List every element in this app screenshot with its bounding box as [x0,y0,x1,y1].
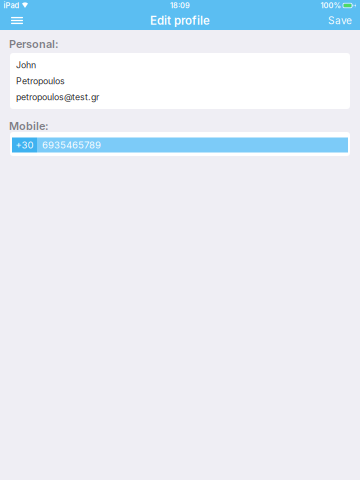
staticText: +30 [15,139,33,151]
staticText: 6935465789 [42,139,101,151]
button[interactable]: 6935465789 [37,137,348,152]
staticText: iPad [3,1,19,10]
button[interactable]: Menu [0,11,34,30]
button[interactable]: +30 [12,137,37,152]
staticText: 100% [320,1,340,10]
button[interactable]: petropoulos@test.gr [10,89,350,105]
staticText: Save [328,14,352,27]
staticText: Petropoulos [16,76,65,86]
button[interactable]: Save [316,11,360,30]
staticText: Mobile: [9,119,48,133]
staticText: 18:09 [170,1,190,10]
button[interactable]: Petropoulos [10,73,350,89]
staticText: Edit profile [150,14,210,27]
staticText: Personal: [9,37,58,51]
button[interactable]: John [10,57,350,73]
staticText: petropoulos@test.gr [16,92,99,102]
staticText: John [16,60,36,70]
